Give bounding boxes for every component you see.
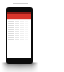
button[interactable]	[7, 20, 31, 22]
button[interactable]	[7, 34, 31, 36]
button[interactable]	[7, 26, 31, 28]
button[interactable]	[7, 36, 31, 38]
button[interactable]	[7, 38, 31, 40]
button[interactable]	[7, 32, 31, 34]
button[interactable]	[7, 24, 31, 26]
button[interactable]	[7, 22, 31, 24]
button[interactable]	[7, 28, 31, 30]
button[interactable]	[7, 30, 31, 32]
